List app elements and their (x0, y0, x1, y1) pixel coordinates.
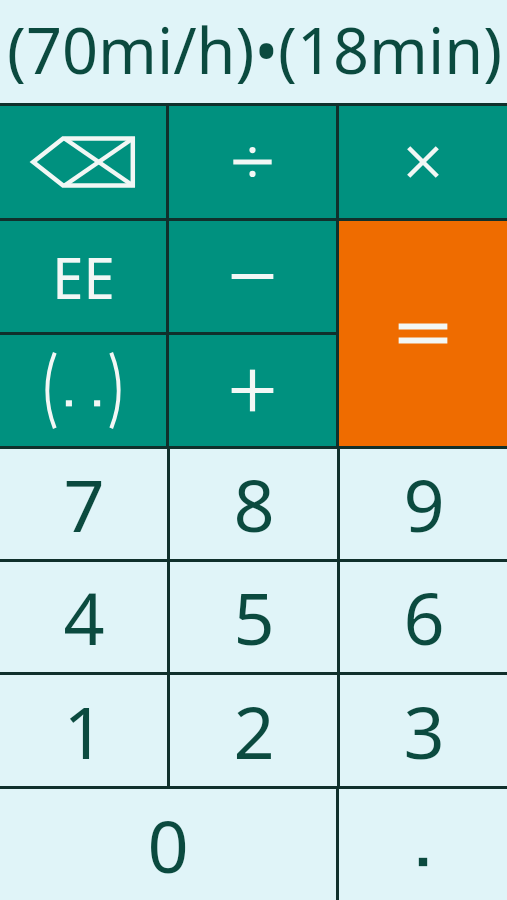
staticText: 5 (233, 568, 275, 666)
staticText: EE (52, 239, 115, 315)
button[interactable]: Multiply (339, 106, 507, 218)
button[interactable]: 2 (170, 675, 337, 786)
button[interactable]: 4 (0, 562, 167, 672)
button[interactable]: EE (0, 221, 166, 332)
staticText: 7 (63, 455, 105, 553)
button[interactable]: 8 (170, 449, 337, 559)
button[interactable]: Divide (169, 106, 336, 218)
button[interactable]: Minus (169, 221, 336, 332)
button[interactable]: Backspace (0, 106, 166, 218)
staticText: 4 (63, 568, 105, 666)
staticText: 6 (403, 568, 445, 666)
staticText: 3 (403, 682, 445, 780)
button[interactable]: Decimal point (339, 789, 507, 900)
button[interactable]: 9 (340, 449, 507, 559)
staticText: 9 (403, 455, 445, 553)
button[interactable]: Parentheses (0, 335, 166, 446)
button[interactable]: 1 (0, 675, 167, 786)
button[interactable]: 3 (340, 675, 507, 786)
button[interactable]: 7 (0, 449, 167, 559)
button[interactable]: Equals (339, 221, 507, 446)
staticText: 2 (233, 682, 275, 780)
button[interactable]: 6 (340, 562, 507, 672)
staticText: 0 (147, 796, 189, 894)
staticText: (70mi/h)•(18min) (7, 7, 503, 93)
button[interactable]: 5 (170, 562, 337, 672)
staticText: 8 (233, 455, 275, 553)
button[interactable]: 0 (0, 789, 336, 900)
staticText: 1 (63, 682, 105, 780)
button[interactable]: Plus (169, 335, 336, 446)
